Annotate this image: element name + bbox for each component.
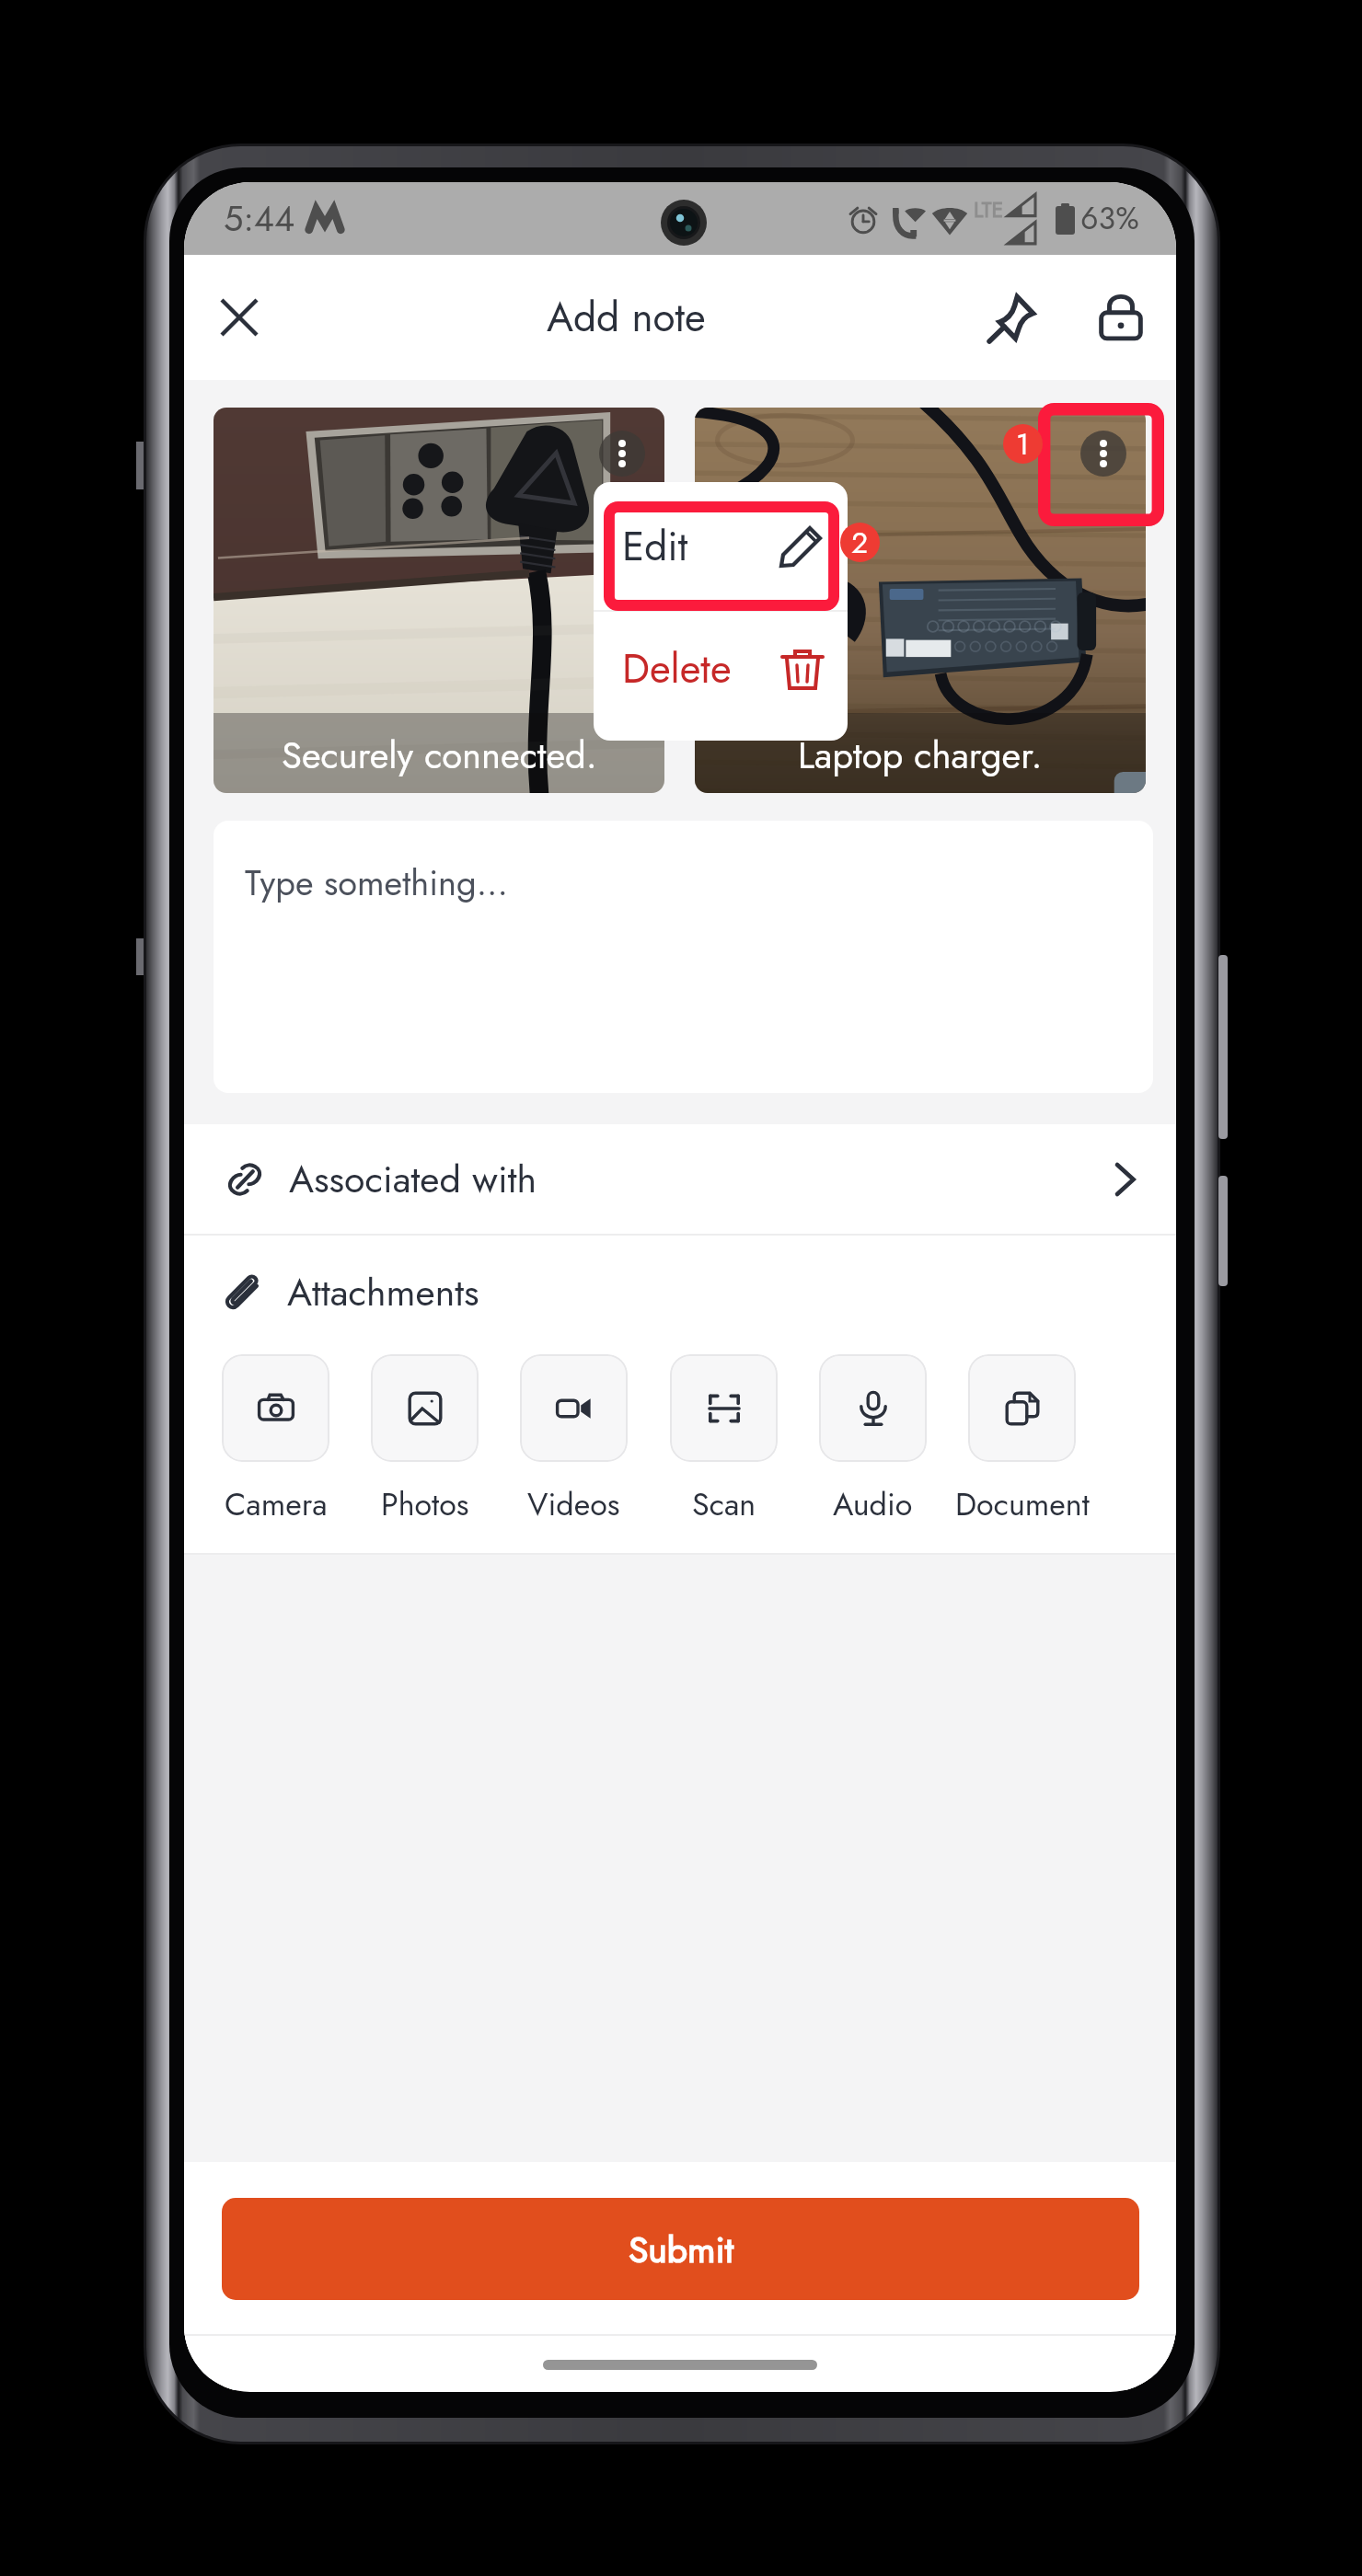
staticText: Audio	[833, 1482, 913, 1527]
button[interactable]: Lock note	[1077, 273, 1165, 362]
button[interactable]: Associated with	[184, 1124, 1176, 1234]
button[interactable]: More options	[599, 431, 645, 477]
button[interactable]: More options	[1080, 431, 1126, 477]
button[interactable]: Audio	[782, 1354, 964, 1527]
staticText: Submit	[629, 2224, 733, 2275]
staticText: 5:44	[224, 193, 295, 244]
staticText: Associated with	[289, 1152, 537, 1206]
button[interactable]: Delete	[594, 612, 848, 726]
staticText: Document	[955, 1482, 1090, 1527]
staticText: 2	[851, 523, 869, 561]
button[interactable]: Submit	[222, 2198, 1139, 2300]
button[interactable]: Scan	[633, 1354, 814, 1527]
button[interactable]: Type something...	[214, 821, 1153, 1093]
staticText: Type something...	[245, 857, 508, 908]
staticText: Laptop charger.	[798, 729, 1043, 782]
staticText: Scan	[692, 1482, 756, 1527]
staticText: Attachments	[287, 1265, 479, 1319]
button[interactable]: Securely connected.	[214, 408, 664, 793]
staticText: Add note	[547, 288, 706, 347]
staticText: Camera	[225, 1482, 328, 1527]
button[interactable]: Photos	[334, 1354, 515, 1527]
button[interactable]: Camera	[185, 1354, 366, 1527]
staticText: 1	[1016, 424, 1030, 463]
button[interactable]: Videos	[483, 1354, 664, 1527]
staticText: Delete	[622, 639, 732, 698]
staticText: LTE	[974, 194, 1004, 224]
button[interactable]: Edit	[594, 482, 848, 611]
staticText: 63%	[1080, 196, 1139, 241]
staticText: Securely connected.	[282, 729, 597, 782]
staticText: Edit	[622, 517, 688, 576]
button[interactable]: Laptop charger.	[695, 408, 1146, 793]
button[interactable]: Close	[195, 273, 283, 362]
staticText: Videos	[527, 1482, 620, 1527]
button[interactable]: Pin note	[968, 273, 1056, 362]
staticText: Photos	[381, 1482, 469, 1527]
button[interactable]: Document	[931, 1354, 1113, 1527]
